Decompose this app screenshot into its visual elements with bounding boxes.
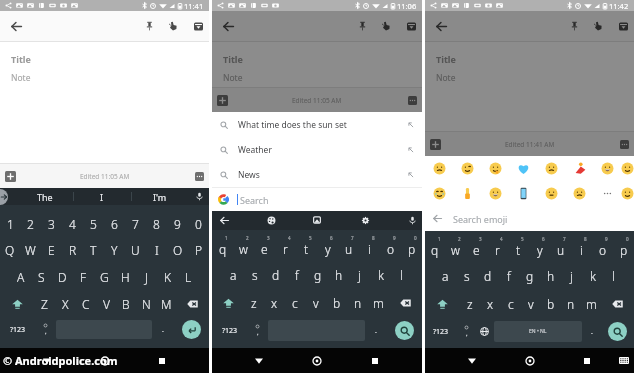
button[interactable]: Comma	[35, 317, 55, 342]
button[interactable]: The	[16, 188, 73, 205]
button[interactable]: More options	[408, 96, 417, 105]
button[interactable]: f	[286, 261, 307, 289]
button[interactable]: Period	[366, 317, 386, 344]
button[interactable]: V	[96, 290, 116, 317]
button[interactable]: k	[582, 262, 603, 290]
button[interactable]: Space	[494, 321, 582, 342]
button[interactable]: a	[435, 262, 456, 290]
button[interactable]: 6	[317, 232, 338, 261]
button[interactable]: 0	[613, 233, 634, 262]
button[interactable]: X	[55, 290, 76, 317]
button[interactable]: J	[136, 263, 157, 290]
button[interactable]: Emoji	[537, 156, 565, 181]
button[interactable]: Archive	[401, 16, 421, 36]
button[interactable]: g	[519, 262, 540, 290]
button[interactable]: C	[76, 290, 96, 317]
button[interactable]: 9	[380, 232, 401, 261]
button[interactable]: Emoji	[565, 181, 593, 206]
button[interactable]: Emoji	[593, 156, 621, 181]
button[interactable]: Emoji	[537, 181, 565, 206]
button[interactable]: 8	[359, 232, 380, 261]
button[interactable]: 4	[275, 232, 296, 261]
button[interactable]: E	[41, 236, 62, 263]
button[interactable]: c	[501, 290, 521, 318]
button[interactable]: Shift	[212, 289, 244, 317]
button[interactable]: Comma	[247, 317, 267, 344]
button[interactable]: Home	[519, 350, 541, 372]
button[interactable]: A	[10, 263, 31, 290]
button[interactable]: Search emoji	[425, 206, 634, 231]
button[interactable]: 3	[466, 233, 487, 262]
button[interactable]: 3	[41, 212, 62, 236]
button[interactable]: Emoji	[481, 156, 509, 181]
button[interactable]: Home	[306, 350, 328, 372]
button[interactable]: n	[347, 289, 368, 317]
button[interactable]: 7	[550, 233, 571, 262]
button[interactable]: 4	[487, 233, 508, 262]
button[interactable]: 5	[296, 232, 317, 261]
button[interactable]: b	[326, 289, 347, 317]
button[interactable]: Emoji	[453, 156, 481, 181]
button[interactable]: Stickers	[308, 211, 326, 229]
button[interactable]: Home	[94, 350, 116, 372]
button[interactable]: Add	[430, 139, 441, 150]
button[interactable]: 2	[20, 212, 41, 236]
button[interactable]: Back	[461, 350, 483, 372]
button[interactable]: Search	[395, 321, 414, 340]
button[interactable]: m	[581, 290, 601, 318]
button[interactable]: Archive	[613, 16, 633, 36]
button[interactable]: Enter	[182, 320, 201, 339]
button[interactable]: More options	[620, 140, 629, 149]
button[interactable]: Weather	[212, 137, 422, 162]
button[interactable]: Themes	[262, 211, 280, 229]
button[interactable]: N	[136, 290, 156, 317]
button[interactable]: I	[73, 188, 131, 205]
button[interactable]: x	[480, 290, 501, 318]
button[interactable]: Comma	[457, 318, 475, 345]
button[interactable]: 2	[233, 232, 254, 261]
button[interactable]: 0	[188, 212, 209, 236]
button[interactable]: B	[116, 290, 136, 317]
button[interactable]: s	[244, 261, 265, 289]
button[interactable]: l	[603, 262, 624, 290]
button[interactable]: Change language	[475, 318, 493, 345]
button[interactable]: 0	[401, 232, 422, 261]
button[interactable]: W	[20, 236, 41, 263]
button[interactable]: Y	[104, 236, 125, 263]
button[interactable]: d	[265, 261, 286, 289]
button[interactable]: 7	[338, 232, 359, 261]
button[interactable]: Backspace	[601, 290, 634, 318]
button[interactable]: Emoji	[621, 156, 634, 181]
button[interactable]: What time does the sun set	[212, 112, 422, 137]
button[interactable]: Emoji	[453, 181, 481, 206]
button[interactable]: Emoji	[425, 181, 453, 206]
button[interactable]: h	[540, 262, 561, 290]
button[interactable]: s	[456, 262, 477, 290]
button[interactable]: 8	[571, 233, 592, 262]
button[interactable]: 1	[0, 212, 20, 236]
button[interactable]: D	[52, 263, 73, 290]
button[interactable]: ?123	[212, 317, 247, 344]
button[interactable]: 5	[508, 233, 529, 262]
button[interactable]: K	[157, 263, 178, 290]
button[interactable]: v	[305, 289, 326, 317]
button[interactable]: Archive	[188, 16, 208, 36]
button[interactable]: Reminder	[588, 16, 608, 36]
button[interactable]: l	[391, 261, 412, 289]
button[interactable]: Search	[212, 188, 422, 211]
button[interactable]: Period	[153, 317, 173, 342]
button[interactable]: G	[94, 263, 115, 290]
button[interactable]: j	[349, 261, 370, 289]
button[interactable]: Backspace	[389, 289, 422, 317]
button[interactable]: 9	[592, 233, 613, 262]
button[interactable]: Back	[215, 211, 233, 229]
button[interactable]: Back	[36, 350, 58, 372]
button[interactable]: U	[125, 236, 146, 263]
button[interactable]: Emoji	[593, 181, 621, 206]
button[interactable]: Recents	[576, 350, 598, 372]
button[interactable]: j	[561, 262, 582, 290]
button[interactable]: Emoji	[621, 181, 634, 206]
button[interactable]: More options	[195, 172, 204, 181]
